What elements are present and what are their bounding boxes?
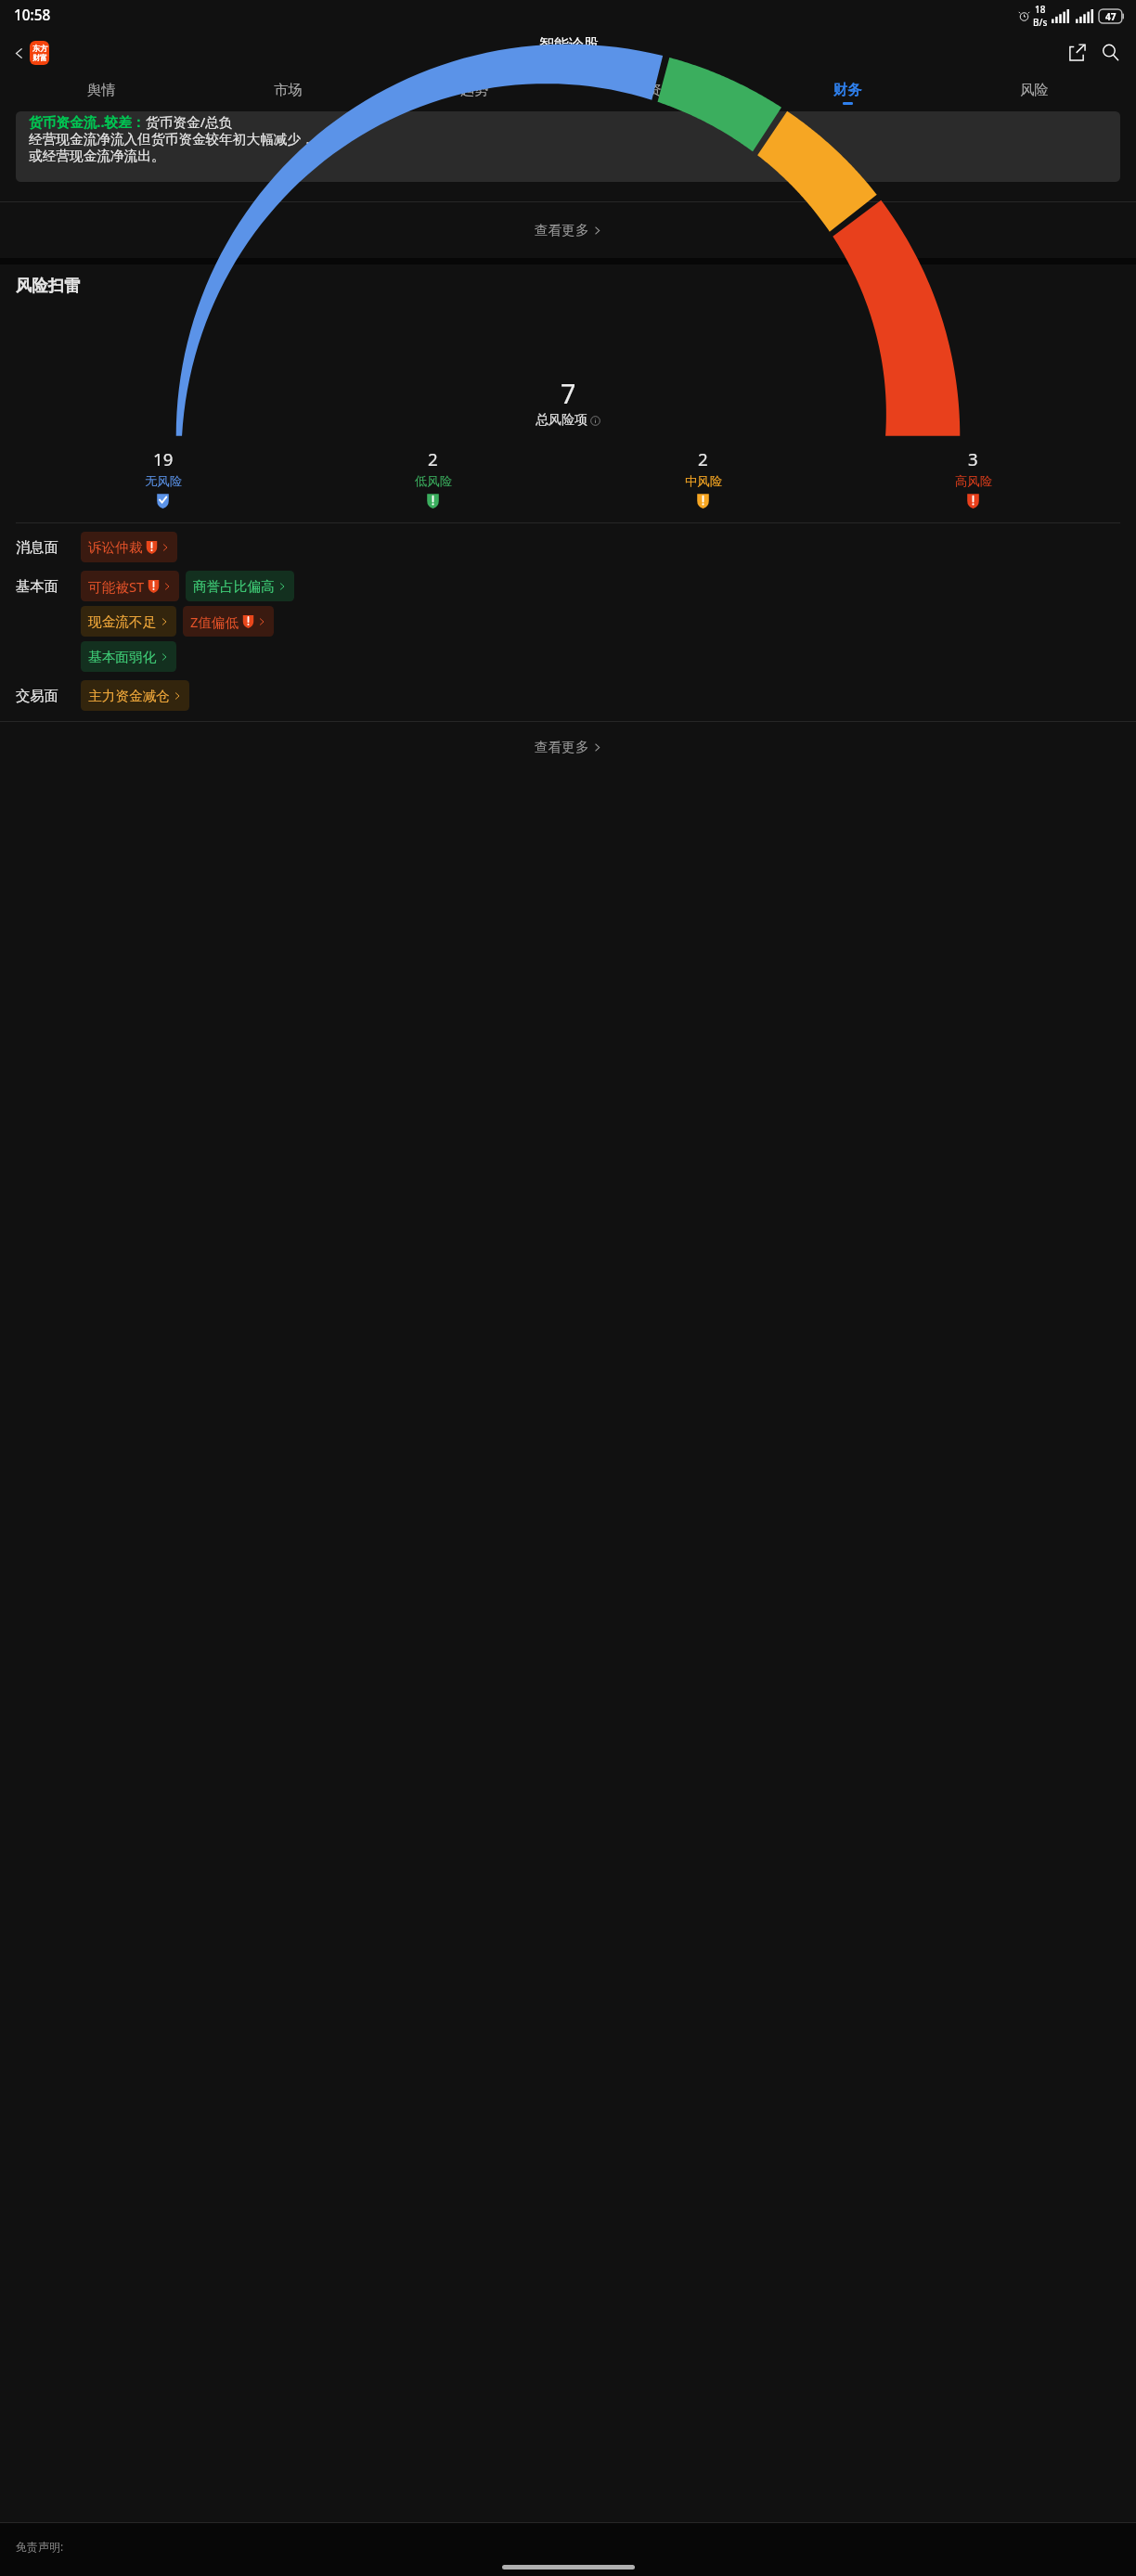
staticText: 风险 [1020, 81, 1049, 98]
staticText: 商誉占比偏高 [193, 578, 275, 595]
staticText: 主力资金减仓 [88, 688, 170, 704]
staticText: 47 [1105, 10, 1117, 23]
staticText: 3 [968, 447, 978, 470]
staticText: 交易面 [16, 687, 58, 704]
staticText: 资金 [647, 81, 676, 98]
button[interactable]: 市场 [195, 74, 381, 111]
staticText: 趋势 [460, 81, 489, 98]
staticText: 财务 [833, 81, 862, 98]
button[interactable]: 基本面弱化 [81, 641, 176, 672]
staticText: 2 [428, 447, 438, 470]
staticText: 财富 [32, 53, 47, 62]
staticText: 消息面 [16, 538, 58, 556]
button[interactable]: Search [1097, 39, 1124, 66]
staticText: 货币资金流..较差： [29, 112, 146, 131]
staticText: 经营现金流净流入但货币资金较年初大幅减少， [29, 131, 315, 148]
button[interactable]: 查看更多 [0, 202, 1136, 258]
button[interactable]: 主力资金减仓 [81, 680, 189, 711]
button[interactable]: 可能被ST [81, 571, 179, 601]
staticText: 无风险 [145, 473, 182, 489]
staticText: 舆情 [87, 81, 116, 98]
staticText: 查看更多 [535, 739, 589, 755]
staticText: 查看更多 [535, 222, 589, 238]
button[interactable]: 财务 [755, 74, 941, 111]
staticText: 10:58 [14, 6, 51, 25]
staticText: 可能被ST [88, 577, 145, 596]
staticText: 基本面弱化 [88, 649, 157, 665]
staticText: 免责声明: [16, 2539, 64, 2554]
button[interactable]: Z值偏低 [183, 606, 274, 637]
button[interactable]: 诉讼仲裁 [81, 532, 177, 562]
staticText: 诉讼仲裁 [88, 539, 143, 556]
button[interactable]: 资金 [568, 74, 755, 111]
staticText: B/s [1033, 16, 1048, 29]
staticText: 风险扫雷 [16, 276, 81, 296]
staticText: 19 [153, 447, 174, 470]
button[interactable]: 现金流不足 [81, 606, 176, 637]
staticText: 智能诊股 [539, 35, 599, 54]
button[interactable]: Back [9, 38, 52, 68]
button[interactable]: 商誉占比偏高 [186, 571, 294, 601]
staticText: 基本面 [16, 577, 58, 595]
staticText: 货币资金/总负 [146, 112, 233, 131]
staticText: 高风险 [955, 473, 992, 489]
button[interactable]: Share [1064, 39, 1091, 66]
staticText: Z值偏低 [190, 612, 239, 631]
staticText: 市场 [274, 81, 303, 98]
button[interactable]: 趋势 [381, 74, 568, 111]
staticText: 低风险 [415, 473, 452, 489]
button[interactable]: 舆情 [8, 74, 195, 111]
staticText: 总风险项 [536, 412, 587, 429]
staticText: 或经营现金流净流出。 [29, 148, 165, 164]
button[interactable]: 货币资金流..较差： [16, 111, 1120, 182]
staticText: 7 [561, 375, 576, 411]
staticText: 18 [1035, 3, 1046, 16]
staticText: 东方 [32, 44, 47, 53]
staticText: 现金流不足 [88, 613, 157, 630]
staticText: 2 [698, 447, 708, 470]
button[interactable]: 风险 [941, 74, 1128, 111]
button[interactable]: 查看更多 [0, 722, 1136, 772]
staticText: 中风险 [685, 473, 722, 489]
